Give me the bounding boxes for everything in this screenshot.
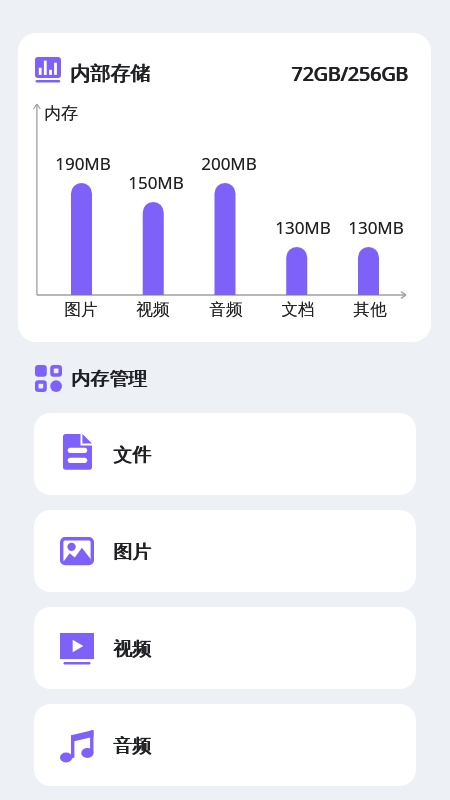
staticText: 150MB	[116, 171, 196, 194]
staticText: 音频	[113, 734, 151, 758]
staticText: 音频	[114, 734, 152, 758]
staticText: 内部存储	[71, 61, 151, 86]
staticText: 内部存储	[70, 61, 150, 86]
staticText: 视频	[113, 637, 151, 661]
staticText: 文件	[113, 443, 151, 467]
staticText: 其他	[330, 299, 410, 320]
staticText: 200MB	[189, 152, 269, 175]
staticText: 音频	[113, 734, 151, 758]
staticText: 视频	[113, 299, 193, 320]
staticText: 图片	[114, 540, 152, 564]
staticText: 视频	[113, 299, 193, 320]
button[interactable]: 音频	[34, 704, 416, 786]
staticText: 文件	[114, 443, 152, 467]
staticText: 音频	[186, 299, 266, 320]
staticText: 130MB	[336, 216, 416, 239]
staticText: 130MB	[336, 216, 416, 239]
staticText: 72GB/256GB	[291, 60, 408, 87]
staticText: 音频	[114, 734, 152, 758]
staticText: 文件	[113, 443, 151, 467]
button[interactable]: 图片	[34, 510, 416, 592]
staticText: 内存管理	[72, 367, 148, 391]
staticText: 190MB	[43, 152, 123, 175]
staticText: 内部存储	[70, 61, 150, 86]
staticText: 图片	[41, 299, 121, 320]
staticText: 130MB	[263, 216, 343, 239]
button[interactable]: 文件	[34, 413, 416, 495]
staticText: 72GB/256GB	[291, 60, 408, 87]
staticText: 72GB/256GB	[292, 60, 409, 87]
staticText: 内存管理	[72, 367, 148, 391]
staticText: 视频	[114, 637, 152, 661]
staticText: 音频	[186, 299, 266, 320]
staticText: 内部存储	[71, 61, 151, 86]
staticText: 文档	[258, 299, 338, 320]
staticText: 视频	[113, 637, 151, 661]
staticText: 文档	[258, 299, 338, 320]
staticText: 图片	[113, 540, 151, 564]
staticText: 内存	[44, 103, 78, 124]
staticText: 130MB	[263, 216, 343, 239]
staticText: 72GB/256GB	[292, 60, 409, 87]
button[interactable]: 视频	[34, 607, 416, 689]
staticText: 内存	[44, 103, 78, 124]
staticText: 200MB	[189, 152, 269, 175]
staticText: 图片	[41, 299, 121, 320]
staticText: 内存管理	[71, 367, 147, 391]
staticText: 内存管理	[71, 367, 147, 391]
staticText: 190MB	[43, 152, 123, 175]
staticText: 图片	[114, 540, 152, 564]
staticText: 150MB	[116, 171, 196, 194]
staticText: 其他	[330, 299, 410, 320]
staticText: 视频	[114, 637, 152, 661]
staticText: 图片	[113, 540, 151, 564]
staticText: 文件	[114, 443, 152, 467]
